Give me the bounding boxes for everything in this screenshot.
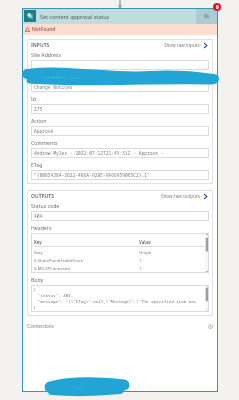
staticText: Id bbox=[31, 95, 36, 102]
staticText: Connections bbox=[27, 323, 54, 329]
staticText: Andrew Myles - 2022-07-12T21:45:51Z - Ap… bbox=[34, 150, 164, 156]
staticText: NotFound bbox=[32, 26, 56, 33]
staticText: "message": "{\"ETag\":null,\"Message\":\… bbox=[33, 299, 197, 305]
button[interactable]: "{80854384-3D22-486A-928E-9F66959065C2},… bbox=[31, 170, 209, 180]
staticText: Set content approval status bbox=[40, 13, 110, 20]
button[interactable]: 0s bbox=[196, 8, 218, 24]
staticText: Status code bbox=[31, 202, 60, 209]
button[interactable]: Key bbox=[31, 233, 209, 273]
staticText: Change Notices bbox=[34, 84, 73, 90]
staticText: 0 bbox=[216, 4, 219, 10]
staticText: Show raw outputs bbox=[161, 193, 200, 199]
staticText: Vary bbox=[34, 250, 139, 256]
staticText: Key bbox=[34, 239, 139, 245]
staticText: Approve bbox=[34, 128, 54, 134]
button[interactable] bbox=[31, 60, 209, 70]
staticText: Headers bbox=[31, 224, 52, 231]
button[interactable]: 404 bbox=[31, 211, 209, 221]
staticText: Origin bbox=[139, 250, 205, 256]
staticText: 1 bbox=[139, 266, 205, 272]
staticText: X-MS-SPConnector bbox=[34, 266, 139, 272]
button[interactable]: Connections bbox=[27, 321, 213, 331]
staticText: Body bbox=[31, 276, 44, 283]
staticText: 1 bbox=[139, 258, 205, 264]
button[interactable]: OUTPUTS bbox=[27, 190, 213, 202]
staticText: } bbox=[33, 305, 36, 311]
staticText: Site Address bbox=[31, 51, 61, 58]
button[interactable]: Approve bbox=[31, 126, 209, 136]
other: Settings bbox=[208, 324, 213, 329]
button[interactable]: 275 bbox=[31, 104, 209, 114]
button[interactable]: Change Notices bbox=[31, 82, 209, 92]
staticText: X-SharePointHealthScore bbox=[34, 258, 139, 264]
other: Error count bbox=[213, 3, 221, 11]
staticText: Show raw inputs bbox=[164, 42, 200, 48]
button[interactable]: Andrew Myles - 2022-07-12T21:45:51Z - Ap… bbox=[31, 148, 209, 158]
button[interactable]: Set content approval status bbox=[22, 8, 218, 24]
staticText: Comments bbox=[31, 139, 58, 146]
staticText: Library Name bbox=[31, 73, 64, 80]
staticText: OUTPUTS bbox=[31, 193, 54, 200]
button[interactable]: { bbox=[31, 285, 209, 312]
staticText: INPUTS bbox=[31, 42, 50, 49]
staticText: 0s bbox=[204, 13, 210, 20]
staticText: 275 bbox=[34, 106, 43, 112]
staticText: 404 bbox=[34, 213, 43, 219]
staticText: Action bbox=[31, 117, 47, 124]
staticText: ETag bbox=[31, 161, 43, 168]
staticText: "status": 404, bbox=[33, 293, 74, 299]
staticText: { bbox=[33, 287, 36, 293]
staticText: Value bbox=[139, 239, 205, 245]
button[interactable]: INPUTS bbox=[27, 39, 213, 51]
staticText: "{80854384-3D22-486A-928E-9F66959065C2},… bbox=[34, 172, 150, 178]
